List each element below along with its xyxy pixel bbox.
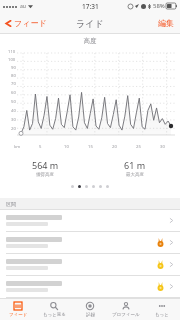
staticText: プロフィール: [112, 312, 140, 318]
staticText: フィード: [14, 18, 47, 28]
button[interactable]: 記録: [72, 299, 108, 320]
staticText: 20: [112, 144, 117, 150]
staticText: フィード: [9, 312, 28, 318]
button[interactable]: フィード: [0, 15, 52, 31]
staticText: 61 m: [124, 159, 146, 171]
staticText: もっと: [155, 312, 169, 318]
staticText: 70: [11, 81, 16, 87]
other: Medal: [156, 282, 165, 291]
staticText: 獲得高度: [36, 172, 54, 178]
button[interactable]: Medal: [0, 276, 180, 298]
staticText: au: [20, 3, 26, 10]
button[interactable]: もっと: [144, 299, 180, 320]
button[interactable]: [0, 210, 180, 232]
staticText: 564 m: [32, 159, 59, 171]
staticText: 90: [11, 65, 16, 71]
staticText: 80: [11, 73, 16, 79]
staticText: 編集: [158, 18, 174, 28]
button[interactable]: プロフィール: [108, 299, 144, 320]
button[interactable]: フィード: [0, 299, 36, 320]
staticText: 15: [88, 144, 93, 150]
staticText: 記録: [86, 312, 95, 318]
staticText: 5: [39, 144, 42, 150]
staticText: 100: [8, 57, 16, 63]
button[interactable]: Medal: [0, 232, 180, 254]
staticText: 高度: [0, 37, 180, 45]
staticText: 区間: [6, 201, 16, 207]
staticText: 30: [160, 144, 165, 150]
staticText: 58%: [153, 2, 165, 10]
staticText: 60: [11, 90, 16, 96]
staticText: 17:31: [82, 2, 99, 11]
staticText: 30: [11, 117, 16, 123]
button[interactable]: 編集: [152, 15, 180, 31]
staticText: 最大高度: [126, 172, 144, 178]
staticText: ライド: [76, 18, 104, 29]
staticText: 20: [11, 126, 16, 132]
staticText: 40: [11, 108, 16, 114]
staticText: km: [14, 144, 21, 150]
other: Medal: [156, 238, 165, 247]
staticText: もっと見る: [43, 312, 66, 318]
staticText: 110: [8, 49, 16, 55]
staticText: 25: [136, 144, 141, 150]
button[interactable]: もっと見る: [36, 299, 72, 320]
button[interactable]: Medal: [0, 254, 180, 276]
other: Medal: [156, 260, 165, 269]
staticText: 50: [11, 99, 16, 105]
staticText: 10: [64, 144, 69, 150]
